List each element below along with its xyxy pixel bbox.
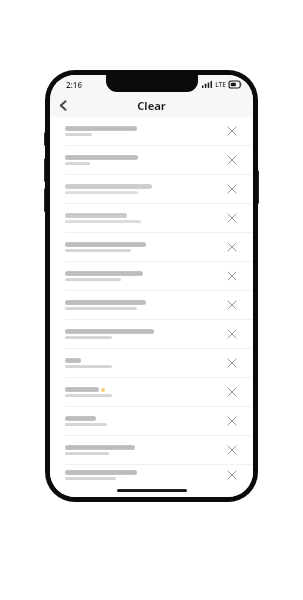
staticText: 2:16 [66,79,82,90]
button[interactable]: Remove item [221,178,243,200]
button[interactable]: Remove item [50,320,253,348]
button[interactable]: Remove item [50,407,253,435]
button[interactable]: Remove item [50,378,253,406]
button[interactable]: Remove item [221,294,243,316]
button[interactable]: Remove item [221,410,243,432]
button[interactable]: Remove item [50,436,253,464]
button[interactable]: Remove item [50,291,253,319]
button[interactable]: Remove item [221,149,243,171]
button[interactable]: Remove item [50,146,253,174]
button[interactable]: Remove item [50,175,253,203]
button[interactable]: Remove item [221,352,243,374]
button[interactable]: Remove item [50,204,253,232]
button[interactable]: Remove item [221,265,243,287]
button[interactable]: Remove item [50,233,253,261]
staticText: LTE [215,80,226,89]
button[interactable]: Remove item [221,236,243,258]
button[interactable]: Remove item [221,207,243,229]
button[interactable]: Remove item [50,465,253,485]
button[interactable]: Remove item [50,349,253,377]
button[interactable]: Remove item [50,117,253,145]
button[interactable]: Remove item [221,439,243,461]
button[interactable]: Remove item [221,381,243,403]
staticText: Clear [137,98,166,113]
button[interactable]: Back [50,93,76,117]
button[interactable]: Remove item [221,120,243,142]
button[interactable]: Remove item [221,323,243,345]
button[interactable]: Remove item [50,262,253,290]
button[interactable]: Remove item [221,465,243,485]
